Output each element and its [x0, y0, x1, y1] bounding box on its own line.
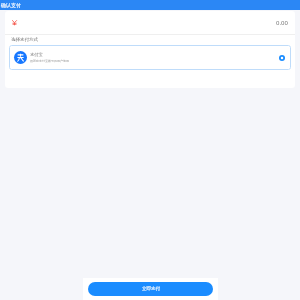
- staticText: 支付宝: [30, 52, 43, 57]
- other: Alipay: [14, 51, 27, 64]
- button[interactable]: 0.00: [5, 11, 295, 34]
- staticText: 立即支付: [142, 286, 160, 292]
- button[interactable]: 确认支付: [1, 2, 21, 8]
- other: Selected: [279, 55, 285, 61]
- button[interactable]: 立即支付: [88, 282, 213, 296]
- staticText: 推荐有支付宝账号的用户使用: [30, 59, 69, 63]
- staticText: 确认支付: [1, 2, 21, 8]
- staticText: 0.00: [276, 19, 288, 27]
- button[interactable]: Alipay: [9, 45, 291, 70]
- staticText: 选择支付方式: [11, 37, 38, 43]
